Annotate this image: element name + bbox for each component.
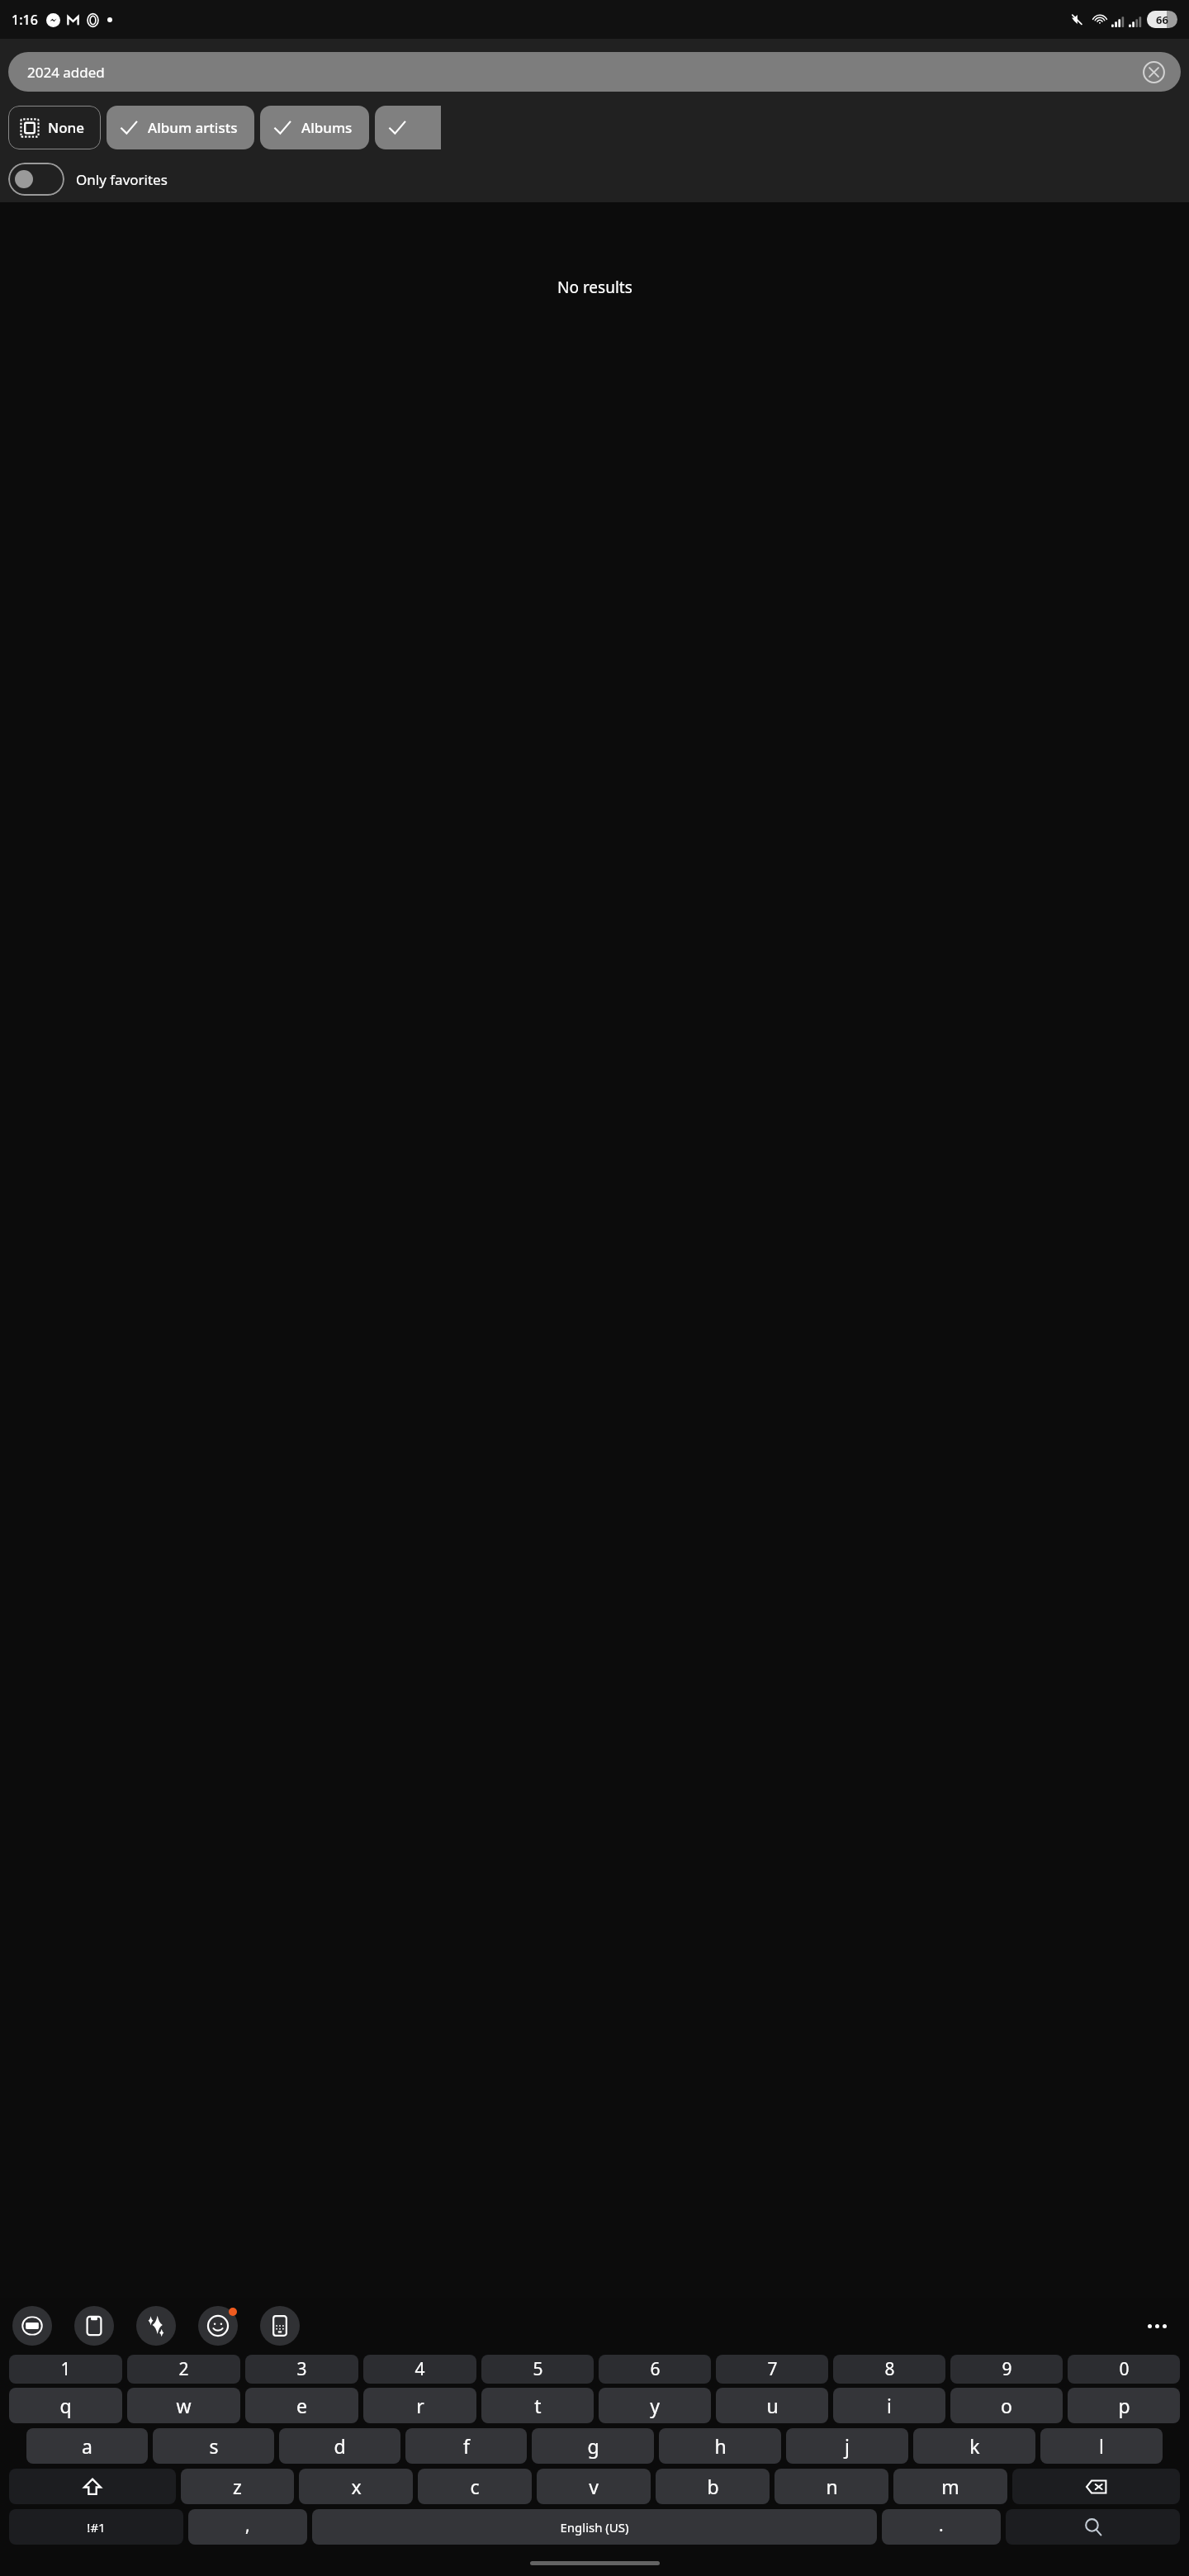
staticText: Only favorites bbox=[76, 170, 168, 189]
staticText: b bbox=[707, 2474, 719, 2499]
staticText: m bbox=[941, 2474, 959, 2499]
button[interactable]: n bbox=[775, 2469, 888, 2504]
button[interactable]: 0 bbox=[1068, 2355, 1180, 2384]
button[interactable]: i bbox=[833, 2388, 945, 2423]
button[interactable] bbox=[375, 106, 441, 149]
button[interactable]: q bbox=[9, 2388, 122, 2423]
button[interactable]: u bbox=[716, 2388, 828, 2423]
button[interactable]: 3 bbox=[245, 2355, 358, 2384]
button[interactable]: 4 bbox=[363, 2355, 476, 2384]
button[interactable]: k bbox=[913, 2428, 1035, 2464]
button[interactable]: 8 bbox=[833, 2355, 945, 2384]
button[interactable]: d bbox=[279, 2428, 400, 2464]
button[interactable]: x bbox=[299, 2469, 413, 2504]
button[interactable]: a bbox=[26, 2428, 148, 2464]
button[interactable]: 5 bbox=[481, 2355, 594, 2384]
staticText: 3 bbox=[296, 2357, 307, 2381]
staticText: w bbox=[176, 2393, 192, 2418]
button[interactable]: t bbox=[481, 2388, 594, 2423]
staticText: 6 bbox=[650, 2357, 661, 2381]
staticText: No results bbox=[557, 277, 632, 298]
button[interactable]: Clipboard bbox=[74, 2306, 114, 2346]
button[interactable]: Password manager bbox=[12, 2306, 52, 2346]
staticText: Albums bbox=[301, 118, 353, 137]
button[interactable]: s bbox=[153, 2428, 274, 2464]
button[interactable]: 2 bbox=[127, 2355, 240, 2384]
staticText: e bbox=[296, 2393, 307, 2418]
button[interactable]: Shift bbox=[9, 2469, 176, 2504]
staticText: 1:16 bbox=[12, 11, 38, 29]
staticText: 4 bbox=[414, 2357, 425, 2381]
staticText: j bbox=[845, 2433, 850, 2459]
button[interactable]: w bbox=[127, 2388, 240, 2423]
button[interactable]: c bbox=[418, 2469, 532, 2504]
button[interactable]: Backspace bbox=[1012, 2469, 1180, 2504]
button[interactable]: o bbox=[950, 2388, 1063, 2423]
button[interactable]: m bbox=[893, 2469, 1007, 2504]
button[interactable]: f bbox=[405, 2428, 527, 2464]
button[interactable]: 1 bbox=[9, 2355, 122, 2384]
staticText: i bbox=[887, 2393, 892, 2418]
button[interactable]: Clear search bbox=[1139, 57, 1168, 87]
staticText: d bbox=[334, 2433, 346, 2459]
staticText: English (US) bbox=[560, 2519, 629, 2536]
button[interactable]: 2024 added bbox=[8, 52, 1181, 92]
staticText: c bbox=[470, 2474, 480, 2499]
button[interactable]: None bbox=[8, 106, 101, 149]
button[interactable]: y bbox=[599, 2388, 711, 2423]
button[interactable]: 9 bbox=[950, 2355, 1063, 2384]
staticText: 2024 added bbox=[27, 63, 105, 82]
staticText: None bbox=[48, 118, 84, 137]
staticText: 5 bbox=[533, 2357, 543, 2381]
button[interactable]: r bbox=[363, 2388, 476, 2423]
staticText: r bbox=[416, 2393, 424, 2418]
button[interactable]: More options bbox=[1136, 2305, 1177, 2346]
button[interactable]: , bbox=[188, 2509, 307, 2545]
staticText: q bbox=[59, 2393, 72, 2418]
button[interactable]: Search bbox=[1006, 2509, 1180, 2545]
button[interactable]: AI assist bbox=[136, 2306, 176, 2346]
staticText: v bbox=[589, 2474, 599, 2499]
button[interactable]: z bbox=[181, 2469, 294, 2504]
button[interactable]: 7 bbox=[716, 2355, 828, 2384]
staticText: Album artists bbox=[148, 118, 238, 137]
button[interactable]: Album artists bbox=[107, 106, 254, 149]
button[interactable]: English (US) bbox=[312, 2509, 877, 2545]
button[interactable]: Emoji bbox=[198, 2306, 238, 2346]
button[interactable]: Albums bbox=[260, 106, 369, 149]
staticText: a bbox=[82, 2433, 92, 2459]
staticText: p bbox=[1118, 2393, 1130, 2418]
button[interactable]: . bbox=[882, 2509, 1001, 2545]
button[interactable]: v bbox=[537, 2469, 651, 2504]
staticText: 7 bbox=[767, 2357, 778, 2381]
staticText: 0 bbox=[1119, 2357, 1130, 2381]
staticText: s bbox=[209, 2433, 219, 2459]
button[interactable]: b bbox=[656, 2469, 770, 2504]
button[interactable]: e bbox=[245, 2388, 358, 2423]
staticText: u bbox=[766, 2393, 779, 2418]
staticText: z bbox=[233, 2474, 242, 2499]
staticText: !#1 bbox=[87, 2519, 106, 2536]
staticText: 9 bbox=[1002, 2357, 1012, 2381]
button[interactable]: l bbox=[1040, 2428, 1163, 2464]
button[interactable]: j bbox=[786, 2428, 908, 2464]
button[interactable]: Only favorites bbox=[8, 163, 168, 196]
staticText: f bbox=[463, 2433, 470, 2459]
button[interactable]: g bbox=[532, 2428, 654, 2464]
staticText: g bbox=[587, 2433, 599, 2459]
button[interactable]: !#1 bbox=[9, 2509, 183, 2545]
staticText: x bbox=[351, 2474, 362, 2499]
staticText: 66 bbox=[1156, 12, 1168, 27]
button[interactable]: p bbox=[1068, 2388, 1180, 2423]
button[interactable]: h bbox=[659, 2428, 781, 2464]
staticText: o bbox=[1001, 2393, 1012, 2418]
staticText: t bbox=[534, 2393, 542, 2418]
staticText: h bbox=[714, 2433, 727, 2459]
staticText: 2 bbox=[178, 2357, 189, 2381]
staticText: l bbox=[1099, 2433, 1104, 2459]
button[interactable]: Keyboard settings bbox=[260, 2306, 300, 2346]
staticText: y bbox=[650, 2393, 660, 2418]
staticText: , bbox=[245, 2513, 250, 2537]
button[interactable]: 6 bbox=[599, 2355, 711, 2384]
staticText: 1 bbox=[60, 2357, 71, 2381]
